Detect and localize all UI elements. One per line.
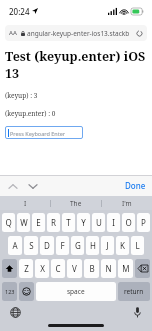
staticText: A	[12, 240, 18, 251]
staticText: E	[36, 217, 41, 228]
staticText: B	[89, 263, 95, 274]
button[interactable]: D	[40, 236, 54, 255]
button[interactable]: C	[51, 259, 65, 278]
staticText: X	[40, 263, 45, 274]
button[interactable]: I	[0, 196, 50, 210]
staticText: R	[51, 217, 56, 228]
staticText: 20:24	[9, 6, 30, 17]
staticText: 123	[5, 288, 15, 295]
button[interactable]: M	[118, 259, 133, 278]
button[interactable]: Backspace	[135, 259, 150, 278]
button[interactable]: I	[107, 213, 120, 232]
staticText: N	[105, 263, 112, 274]
other: Reload	[136, 30, 143, 37]
button[interactable]: Press Keyboard Enter	[5, 126, 83, 139]
button[interactable]: K	[116, 236, 129, 255]
button[interactable]: Y	[77, 213, 90, 232]
staticText: angular-keyup-enter-ios13.stackb	[27, 29, 130, 38]
staticText: Test (keyup.enter) iOS 13	[5, 48, 147, 82]
button[interactable]: T	[62, 213, 75, 232]
button[interactable]: space	[36, 282, 116, 301]
button[interactable]: I'm	[102, 196, 152, 210]
button[interactable]: Previous field	[6, 179, 20, 193]
staticText: U	[96, 217, 102, 228]
staticText: return	[124, 287, 144, 296]
staticText: (keyup) : 3	[5, 91, 38, 100]
button[interactable]: H	[86, 236, 99, 255]
button[interactable]: P	[137, 213, 150, 232]
staticText: Y	[81, 217, 86, 228]
staticText: (keyup.enter) : 0	[5, 109, 56, 118]
button[interactable]: Emoji	[19, 282, 34, 301]
staticText: W	[20, 217, 28, 228]
button[interactable]: U	[92, 213, 105, 232]
staticText: Press Keyboard Enter	[10, 130, 66, 137]
button[interactable]: Shift	[2, 259, 17, 278]
staticText: V	[72, 263, 77, 274]
staticText: J	[106, 240, 109, 251]
staticText: I'm	[122, 199, 132, 208]
staticText: K	[120, 240, 125, 251]
staticText: The	[70, 199, 82, 208]
button[interactable]: V	[67, 259, 82, 278]
staticText: C	[55, 263, 61, 274]
button[interactable]: Z	[19, 259, 33, 278]
staticText: Z	[24, 263, 29, 274]
button[interactable]: AA	[5, 25, 147, 41]
button[interactable]: G	[71, 236, 84, 255]
button[interactable]: A	[8, 236, 22, 255]
button[interactable]: L	[131, 236, 144, 255]
button[interactable]: O	[122, 213, 135, 232]
staticText: D	[44, 240, 50, 251]
staticText: P	[141, 217, 146, 228]
staticText: space	[67, 287, 85, 296]
staticText: T	[66, 217, 71, 228]
staticText: O	[125, 217, 132, 228]
staticText: L	[135, 240, 140, 251]
button[interactable]: X	[35, 259, 49, 278]
button[interactable]: Q	[2, 213, 15, 232]
button[interactable]: R	[47, 213, 60, 232]
button[interactable]: N	[101, 259, 116, 278]
staticText: G	[75, 240, 81, 251]
button[interactable]: J	[101, 236, 114, 255]
staticText: Done	[125, 180, 146, 191]
button[interactable]: Done	[125, 180, 146, 191]
button[interactable]: 123	[2, 282, 17, 301]
button[interactable]: S	[24, 236, 38, 255]
staticText: F	[60, 240, 65, 251]
button[interactable]: The	[51, 196, 101, 210]
button[interactable]: Change keyboard	[9, 306, 21, 318]
staticText: H	[90, 240, 96, 251]
staticText: Q	[5, 217, 12, 228]
button[interactable]: F	[56, 236, 69, 255]
button[interactable]: return	[118, 282, 150, 301]
staticText: S	[29, 240, 34, 251]
staticText: AA	[9, 29, 17, 37]
staticText: I	[112, 217, 115, 228]
button[interactable]: E	[32, 213, 45, 232]
button[interactable]: Next field	[26, 179, 40, 193]
button[interactable]: W	[17, 213, 30, 232]
button[interactable]: B	[84, 259, 99, 278]
staticText: I	[24, 199, 27, 208]
staticText: M	[122, 263, 130, 274]
button[interactable]: Dictation	[131, 306, 143, 318]
